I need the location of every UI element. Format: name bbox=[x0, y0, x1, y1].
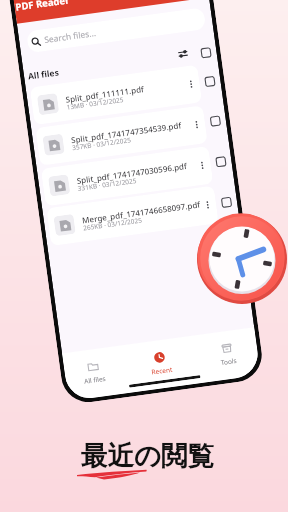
staticText: All files bbox=[83, 374, 106, 386]
staticText: 13MB · 03/12/2025 bbox=[66, 95, 125, 112]
staticText: Split_pdf_1741747030596.pdf bbox=[76, 160, 187, 186]
staticText: Merge_pdf_1741746658097.pdf bbox=[81, 198, 201, 225]
button[interactable]: Select file bbox=[221, 197, 232, 207]
button[interactable]: Select file bbox=[210, 116, 220, 126]
staticText: Split_pdf_111111.pdf bbox=[65, 83, 145, 105]
button[interactable]: More options bbox=[196, 159, 208, 171]
button[interactable]: Recent bbox=[137, 348, 184, 378]
staticText: Split_pdf_1741747354539.pdf bbox=[70, 119, 182, 145]
button[interactable]: Select file bbox=[216, 157, 226, 167]
button[interactable]: Select file bbox=[205, 76, 215, 86]
button[interactable]: Split_pdf_1741747354539.pdf bbox=[35, 105, 208, 166]
button[interactable]: More options bbox=[190, 118, 203, 131]
button[interactable]: More options bbox=[201, 199, 214, 211]
button[interactable]: Tools bbox=[204, 339, 251, 369]
staticText: Tools bbox=[220, 356, 237, 367]
button[interactable]: Merge_pdf_1741746658097.pdf bbox=[46, 185, 219, 246]
staticText: All files bbox=[27, 66, 60, 83]
staticText: 357KB · 03/12/2025 bbox=[72, 135, 132, 152]
button[interactable]: Select all bbox=[201, 48, 211, 58]
staticText: Search files... bbox=[43, 27, 98, 46]
staticText: PDF Reader bbox=[15, 0, 71, 14]
button[interactable]: More options bbox=[185, 78, 197, 90]
button[interactable]: All files bbox=[70, 358, 117, 387]
button[interactable]: Filter bbox=[176, 47, 190, 61]
button[interactable]: Split_pdf_1741747030596.pdf bbox=[41, 146, 213, 206]
staticText: 最近の閲覧 bbox=[81, 439, 215, 472]
staticText: Recent bbox=[151, 365, 173, 377]
button[interactable]: Split_pdf_111111.pdf bbox=[30, 65, 202, 125]
staticText: 331KB · 03/12/2025 bbox=[77, 176, 138, 193]
button[interactable]: Search files... bbox=[26, 7, 206, 53]
staticText: 265KB · 03/12/2025 bbox=[83, 215, 143, 233]
